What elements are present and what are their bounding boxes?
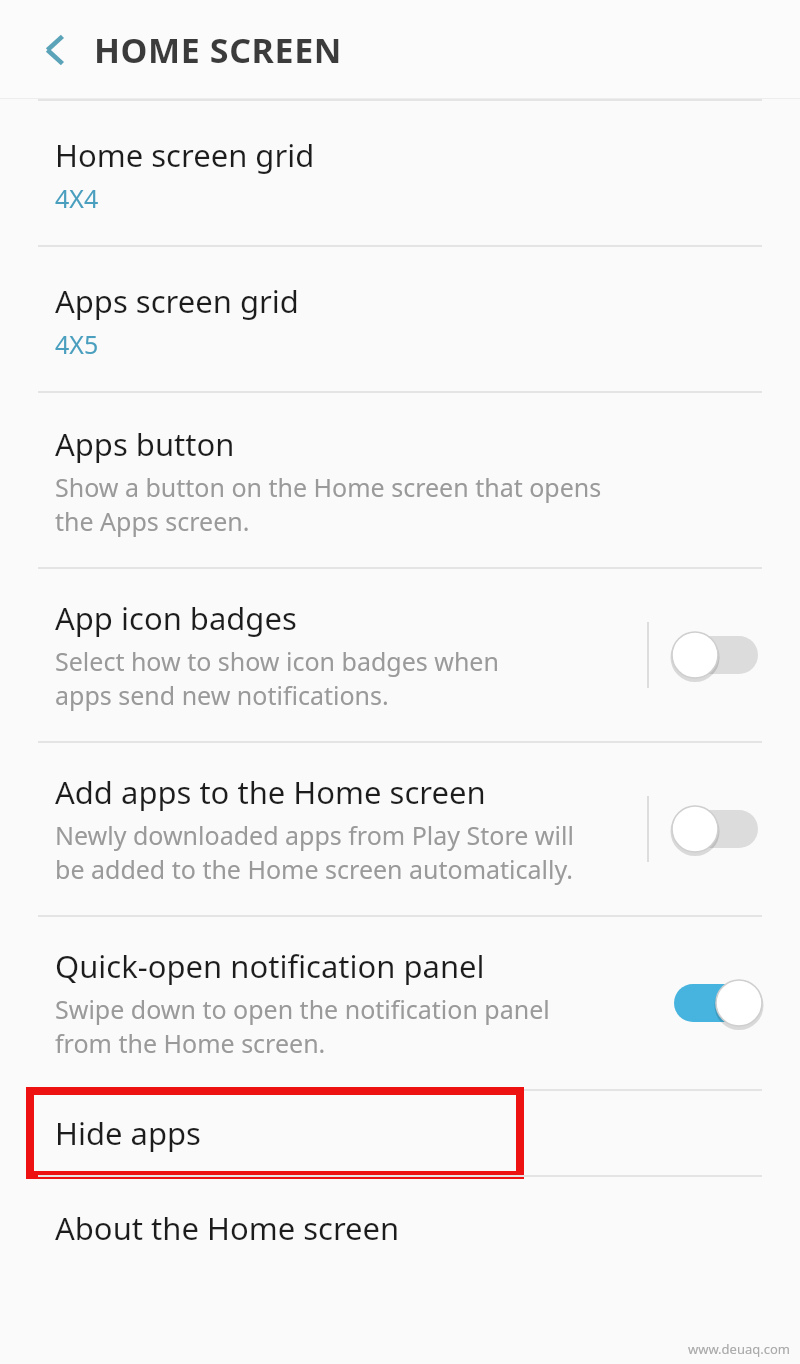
button[interactable]: Toggle off (672, 626, 778, 684)
staticText: Select how to show icon badges when apps… (55, 644, 499, 713)
button[interactable]: Add apps to the Home screen (0, 743, 800, 915)
staticText: Hide apps (55, 1112, 201, 1154)
staticText: Quick-open notification panel (55, 945, 485, 987)
button[interactable]: Toggle on (672, 974, 778, 1032)
button[interactable]: Apps screen grid (0, 247, 800, 391)
staticText: www.deuaq.com (687, 1340, 790, 1358)
staticText: Add apps to the Home screen (55, 771, 486, 813)
button[interactable]: Home screen grid (0, 101, 800, 245)
button[interactable]: Quick-open notification panel (0, 917, 800, 1089)
button[interactable]: About the Home screen (0, 1177, 800, 1279)
staticText: Apps button (55, 423, 235, 465)
button[interactable]: Hide apps (0, 1091, 800, 1175)
staticText: HOME SCREEN (94, 27, 343, 73)
staticText: About the Home screen (55, 1207, 400, 1249)
staticText: App icon badges (55, 597, 297, 639)
button[interactable]: App icon badges (0, 569, 800, 741)
button[interactable]: Toggle off (672, 800, 778, 858)
staticText: Apps screen grid (55, 280, 299, 322)
button[interactable]: Apps button (0, 393, 800, 567)
staticText: Home screen grid (55, 134, 315, 176)
button[interactable]: Back (26, 19, 88, 81)
staticText: 4X5 (55, 327, 99, 361)
staticText: Show a button on the Home screen that op… (55, 470, 602, 539)
staticText: Newly downloaded apps from Play Store wi… (55, 818, 574, 887)
staticText: Swipe down to open the notification pane… (55, 992, 550, 1061)
staticText: 4X4 (55, 181, 99, 215)
